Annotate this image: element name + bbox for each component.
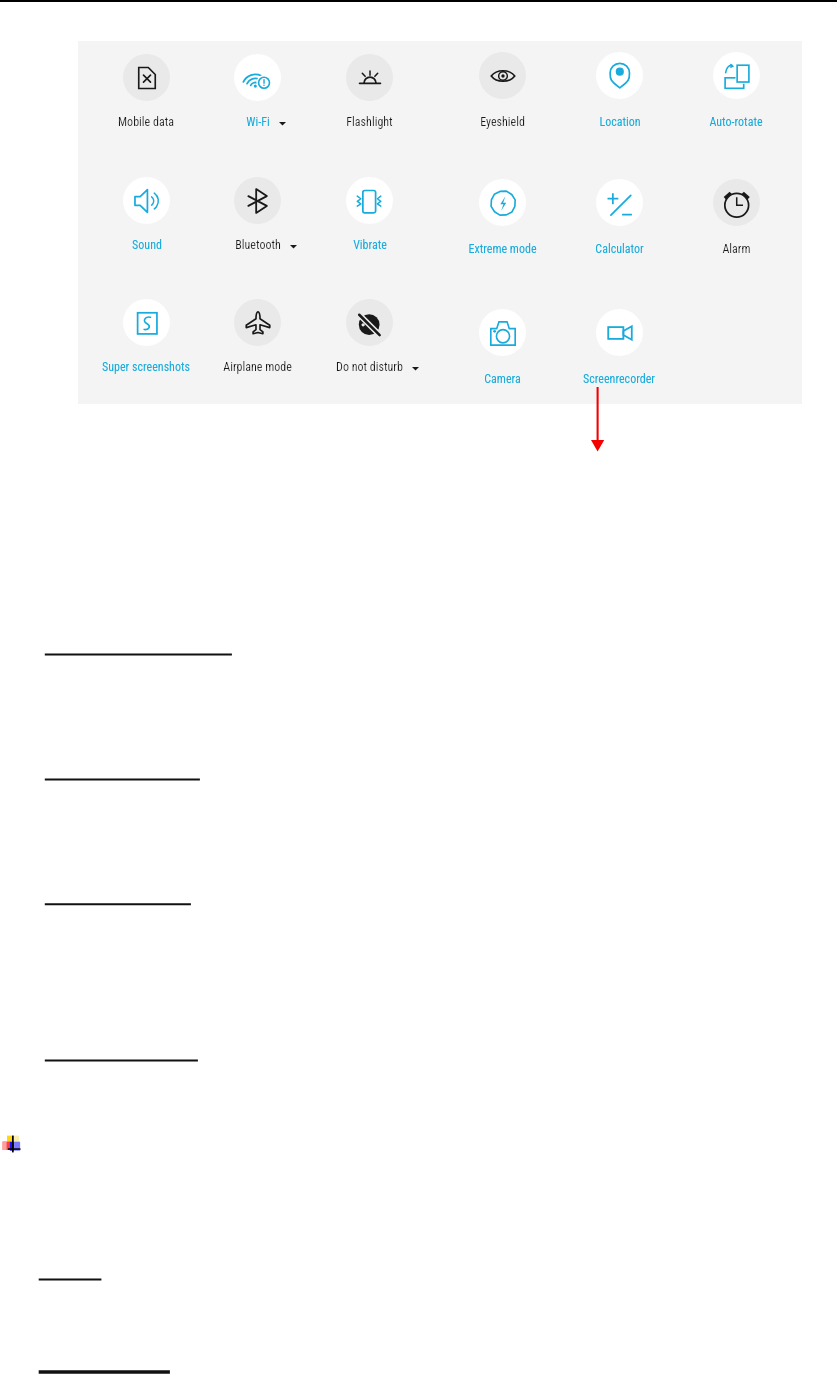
- staticText: Calculator: [595, 242, 644, 256]
- button[interactable]: Flashlight: [346, 54, 393, 129]
- button[interactable]: Super screenshots: [102, 299, 190, 374]
- staticText: Airplane mode: [223, 360, 292, 374]
- button[interactable]: Extreme mode: [468, 179, 537, 256]
- button[interactable]: Airplane mode: [223, 299, 292, 374]
- staticText: Location: [599, 115, 641, 129]
- button[interactable]: Expand Do not disturb settings: [412, 365, 419, 372]
- staticText: Extreme mode: [468, 242, 537, 256]
- button[interactable]: Expand Wi-Fi settings: [279, 120, 286, 127]
- button[interactable]: Mobile data: [118, 54, 174, 129]
- staticText: Flashlight: [346, 115, 393, 129]
- staticText: Wi-Fi: [246, 115, 270, 129]
- staticText: Eyeshield: [480, 115, 525, 129]
- staticText: Mobile data: [118, 115, 174, 129]
- staticText: Alarm: [722, 242, 751, 256]
- button[interactable]: Expand Bluetooth settings: [290, 243, 297, 250]
- button[interactable]: Auto-rotate: [709, 52, 763, 129]
- staticText: Bluetooth: [235, 238, 281, 252]
- button[interactable]: Alarm: [713, 179, 760, 256]
- button[interactable]: Camera: [479, 309, 526, 386]
- button[interactable]: Sound: [123, 177, 170, 252]
- staticText: Screenrecorder: [583, 372, 655, 386]
- staticText: Camera: [484, 372, 521, 386]
- button[interactable]: Vibrate: [346, 177, 393, 252]
- staticText: Auto-rotate: [709, 115, 763, 129]
- staticText: Vibrate: [353, 238, 387, 252]
- staticText: Do not disturb: [336, 360, 403, 374]
- button[interactable]: Eyeshield: [479, 52, 526, 129]
- staticText: Super screenshots: [102, 360, 190, 374]
- button[interactable]: Wi-Fi: [234, 54, 281, 129]
- button[interactable]: Bluetooth: [234, 177, 281, 252]
- button[interactable]: Screenrecorder: [583, 309, 655, 386]
- button[interactable]: Location: [596, 52, 643, 129]
- button[interactable]: Do not disturb: [336, 299, 403, 374]
- button[interactable]: Calculator: [595, 179, 644, 256]
- staticText: Sound: [132, 238, 162, 252]
